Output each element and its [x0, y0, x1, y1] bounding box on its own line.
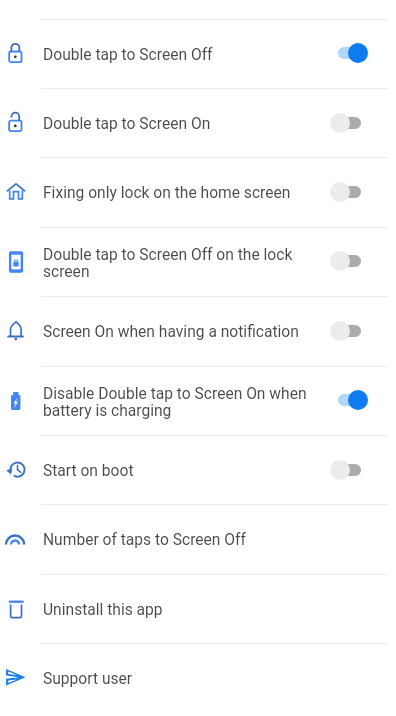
- button[interactable]: Disable Double tap to Screen On when: [0, 367, 396, 435]
- button[interactable]: Uninstall this app: [0, 575, 396, 643]
- button[interactable]: Start on boot: [0, 436, 396, 504]
- button[interactable]: Toggle off: [328, 179, 372, 205]
- staticText: Double tap to Screen On: [43, 115, 211, 133]
- button[interactable]: Screen On when having a notification: [0, 297, 396, 365]
- staticText: Number of taps to Screen Off: [43, 531, 246, 549]
- button[interactable]: Toggle off: [328, 110, 372, 136]
- staticText: Disable Double tap to Screen On when: [43, 385, 307, 403]
- button[interactable]: Fixing only lock on the home screen: [0, 158, 396, 226]
- button[interactable]: Double tap to Screen Off: [0, 20, 396, 88]
- button[interactable]: Toggle off: [328, 318, 372, 344]
- button[interactable]: Toggle off: [328, 457, 372, 483]
- staticText: screen: [43, 263, 90, 281]
- button[interactable]: Double tap to Screen On: [0, 89, 396, 157]
- staticText: Screen On when having a notification: [43, 323, 299, 341]
- staticText: Double tap to Screen Off: [43, 46, 213, 64]
- staticText: Start on boot: [43, 462, 134, 480]
- button[interactable]: Number of taps to Screen Off: [0, 505, 396, 573]
- staticText: battery is charging: [43, 402, 172, 420]
- staticText: Uninstall this app: [43, 601, 163, 619]
- button[interactable]: Toggle on: [328, 40, 372, 66]
- staticText: Double tap to Screen Off on the lock: [43, 246, 293, 264]
- staticText: Fixing only lock on the home screen: [43, 184, 291, 202]
- button[interactable]: Double tap to Screen Off on the lock: [0, 228, 396, 296]
- button[interactable]: Toggle on: [328, 387, 372, 413]
- button[interactable]: Support user: [0, 644, 396, 712]
- button[interactable]: Toggle off: [328, 248, 372, 274]
- staticText: Support user: [43, 670, 133, 688]
